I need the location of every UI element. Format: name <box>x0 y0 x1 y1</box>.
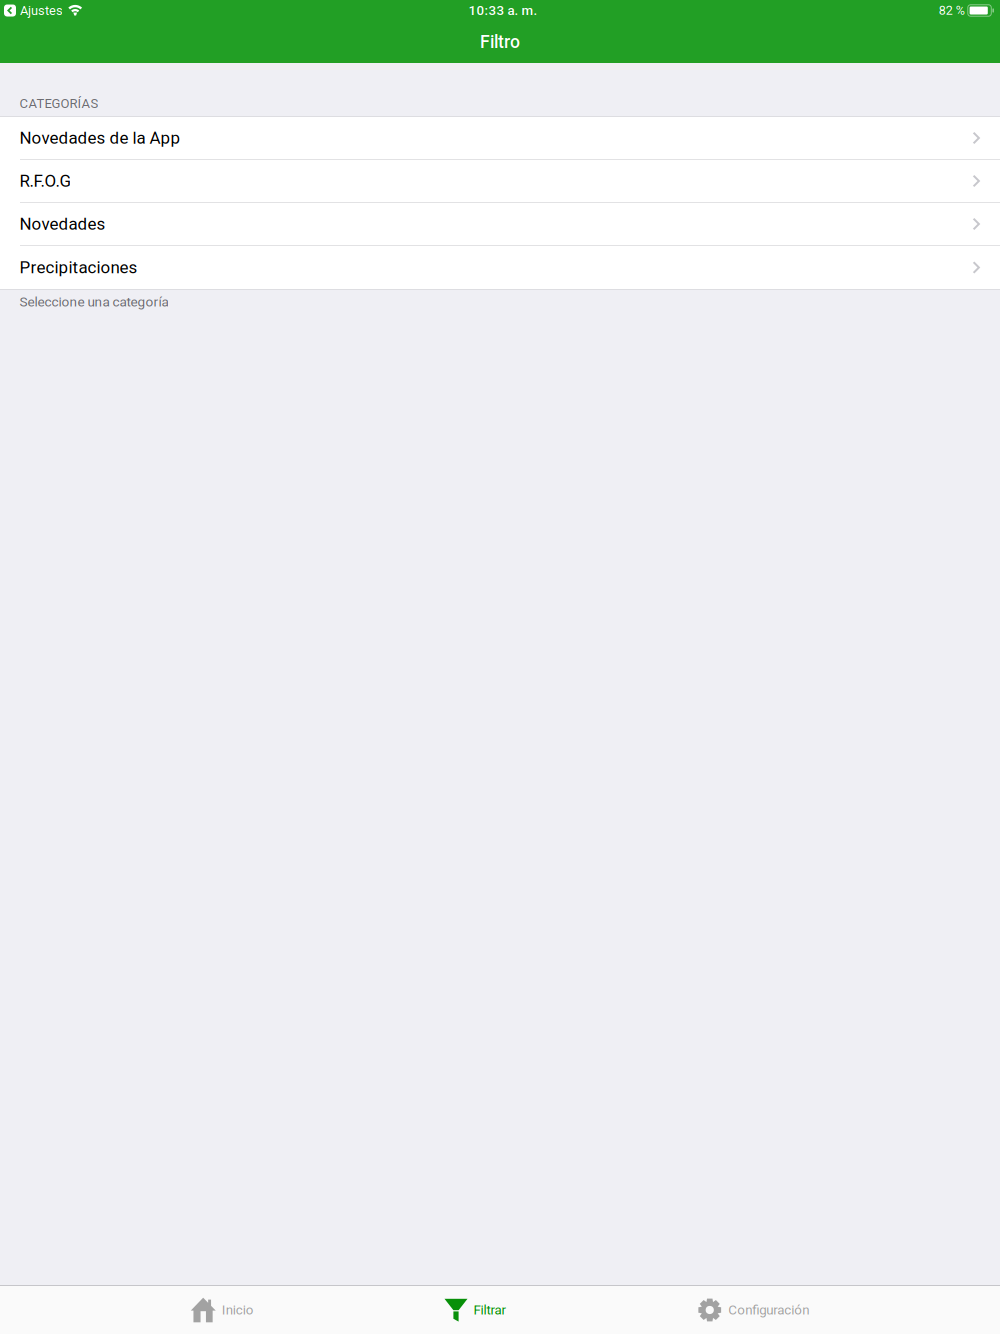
staticText: Filtrar <box>473 1302 506 1318</box>
staticText: Novedades <box>19 214 105 234</box>
staticText: CATEGORÍAS <box>19 96 98 111</box>
staticText: Filtro <box>480 32 520 52</box>
button[interactable]: Configuración <box>697 1286 809 1334</box>
button[interactable]: Precipitaciones <box>0 246 1000 289</box>
staticText: Novedades de la App <box>19 128 180 148</box>
staticText: 10:33 a. m. <box>468 3 537 18</box>
staticText: Ajustes <box>20 3 63 18</box>
staticText: Seleccione una categoría <box>19 294 168 310</box>
staticText: Precipitaciones <box>19 258 137 277</box>
staticText: Inicio <box>222 1302 254 1318</box>
button[interactable]: Inicio <box>191 1286 254 1334</box>
staticText: Configuración <box>728 1302 809 1318</box>
button[interactable]: Novedades <box>0 203 1000 246</box>
button[interactable]: Ajustes <box>0 1 65 19</box>
button[interactable]: Filtrar <box>444 1286 506 1334</box>
staticText: R.F.O.G <box>19 171 71 191</box>
staticText: 82 % <box>939 3 965 18</box>
button[interactable]: R.F.O.G <box>0 160 1000 203</box>
button[interactable]: Novedades de la App <box>0 117 1000 160</box>
